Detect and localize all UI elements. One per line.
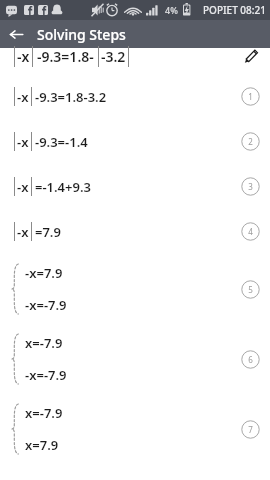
staticText: -3.2 (101, 47, 126, 66)
staticText: POPIET 08:21 (203, 3, 266, 17)
staticText: -x=-7.9 (25, 296, 67, 314)
button[interactable]: 2 (241, 132, 260, 151)
staticText: -x (17, 223, 29, 241)
button[interactable]: 6 (241, 350, 260, 369)
staticText: 5 (248, 284, 253, 295)
staticText: -9.3=-1.4 (35, 133, 88, 151)
staticText: -x=7.9 (25, 264, 63, 282)
staticText: 4% (165, 4, 178, 16)
staticText: -x (17, 88, 29, 106)
staticText: 6 (248, 354, 253, 365)
staticText: =7.9 (35, 223, 61, 241)
staticText: x=-7.9 (25, 404, 63, 422)
staticText: -x=-7.9 (25, 366, 67, 384)
button[interactable]: 7 (241, 420, 260, 439)
button[interactable]: -x=7.9 (0, 254, 270, 324)
button[interactable]: Edit equation (240, 45, 262, 67)
button[interactable]: x=-7.9 (0, 324, 270, 394)
staticText: 4 (248, 226, 253, 237)
staticText: 3 (248, 181, 253, 192)
button[interactable]: -x (0, 164, 270, 209)
staticText: x=-7.9 (25, 334, 63, 352)
button[interactable]: 1 (241, 87, 260, 106)
staticText: -x (17, 133, 29, 151)
button[interactable]: -x (0, 119, 270, 164)
button[interactable]: 5 (241, 280, 260, 299)
staticText: Solving Steps (37, 25, 126, 44)
staticText: 2 (248, 136, 253, 147)
staticText: -x (17, 47, 30, 66)
staticText: x=7.9 (25, 436, 59, 454)
button[interactable]: 4 (241, 222, 260, 241)
staticText: 1 (248, 91, 253, 102)
staticText: -9.3=1.8- (37, 47, 94, 66)
staticText: =-1.4+9.3 (35, 178, 91, 196)
button[interactable]: Back (4, 22, 28, 46)
staticText: -x (17, 178, 29, 196)
staticText: -9.3=1.8-3.2 (35, 88, 107, 106)
button[interactable]: 3 (241, 177, 260, 196)
button[interactable]: -x (0, 74, 270, 119)
staticText: 7 (248, 424, 253, 435)
button[interactable]: -x (0, 209, 270, 254)
button[interactable]: x=-7.9 (0, 394, 270, 464)
